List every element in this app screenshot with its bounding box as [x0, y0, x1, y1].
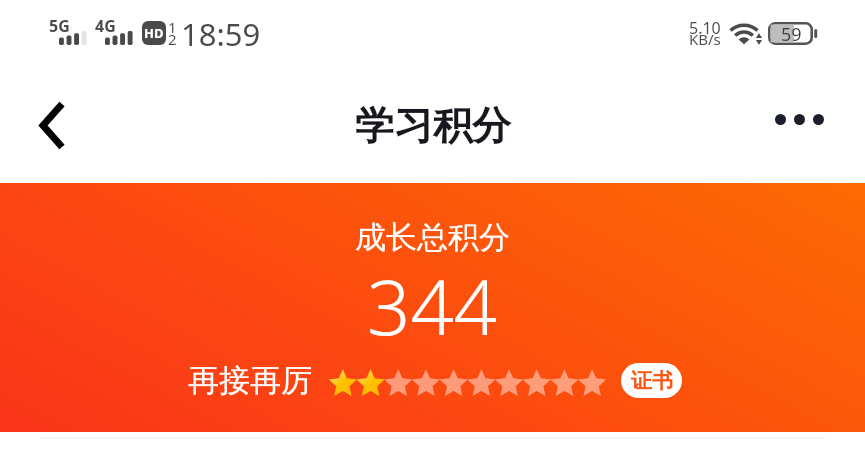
staticText: 证书	[631, 368, 673, 394]
staticText: 再接再厉	[188, 361, 312, 400]
staticText: HD	[144, 24, 164, 42]
button[interactable]: More options	[764, 94, 834, 144]
staticText: 1	[168, 17, 177, 37]
staticText: 59	[781, 22, 802, 45]
button[interactable]: Back	[21, 94, 83, 156]
staticText: 成长总积分	[355, 218, 510, 257]
staticText: 2	[168, 29, 177, 49]
staticText: 5G	[49, 15, 70, 37]
button[interactable]: 证书	[621, 363, 682, 398]
staticText: KB/s	[689, 29, 721, 49]
staticText: 5.10	[689, 17, 721, 39]
staticText: 学习积分	[355, 101, 511, 150]
staticText: 18:59	[181, 13, 261, 55]
staticText: 344	[367, 254, 498, 358]
staticText: 4G	[95, 15, 116, 37]
